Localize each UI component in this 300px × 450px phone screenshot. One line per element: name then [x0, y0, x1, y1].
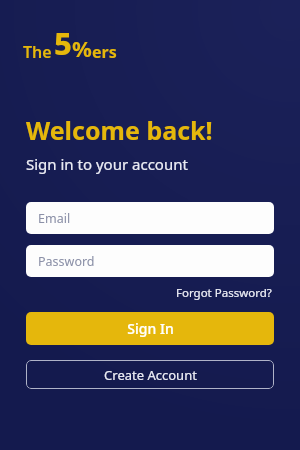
staticText: %: [72, 33, 92, 63]
staticText: Forgot Password?: [176, 285, 272, 301]
staticText: Sign In: [127, 319, 174, 338]
staticText: ers: [92, 41, 117, 63]
staticText: Email: [38, 210, 71, 227]
button[interactable]: Password: [26, 245, 274, 277]
staticText: Create Account: [104, 366, 197, 384]
button[interactable]: Create Account: [26, 360, 274, 389]
staticText: 5: [54, 22, 72, 64]
button[interactable]: Sign In: [26, 312, 274, 345]
button[interactable]: Email: [26, 202, 274, 234]
staticText: Welcome back!: [26, 113, 213, 147]
staticText: The: [23, 41, 52, 63]
staticText: Password: [38, 253, 95, 270]
staticText: Sign in to your account: [26, 154, 188, 174]
button[interactable]: Forgot Password?: [174, 283, 274, 303]
button[interactable]: The 5%ers logo: [23, 22, 117, 64]
